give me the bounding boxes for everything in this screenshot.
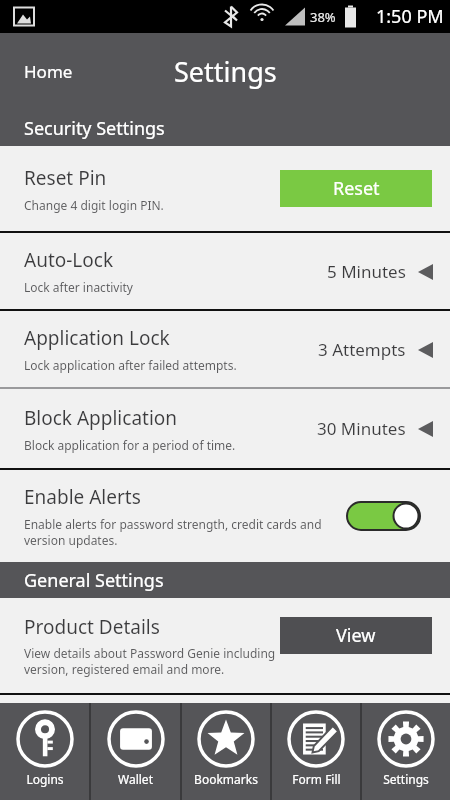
button[interactable]: Product Details xyxy=(0,598,450,693)
button[interactable]: Home xyxy=(0,46,97,97)
staticText: Lock after inactivity xyxy=(24,279,133,295)
staticText: Block Application xyxy=(24,405,178,431)
staticText: General Settings xyxy=(24,568,164,593)
staticText: Change 4 digit login PIN. xyxy=(24,197,164,213)
staticText: Reset xyxy=(333,176,380,201)
staticText: Bookmarks xyxy=(194,771,258,787)
button[interactable]: Reset Pin xyxy=(0,146,450,231)
button[interactable]: View xyxy=(280,617,432,654)
staticText: Wallet xyxy=(118,771,153,787)
button[interactable]: Reset xyxy=(280,170,432,207)
staticText: 1:50 PM xyxy=(376,4,444,29)
staticText: Settings xyxy=(174,53,277,90)
staticText: Application Lock xyxy=(24,325,170,351)
staticText: Auto-Lock xyxy=(24,247,114,273)
button[interactable]: Wallet xyxy=(91,703,180,800)
button[interactable]: Auto-Lock xyxy=(0,233,450,309)
staticText: View details about Password Genie includ… xyxy=(24,645,280,677)
staticText: Form Fill xyxy=(292,771,341,787)
staticText: Block application for a period of time. xyxy=(24,437,236,453)
button[interactable]: Settings xyxy=(362,703,450,800)
button[interactable]: Bookmarks xyxy=(182,703,270,800)
staticText: 38% xyxy=(310,8,336,26)
staticText: Lock application after failed attempts. xyxy=(24,357,237,373)
staticText: Security Settings xyxy=(24,116,165,141)
button[interactable]: Form Fill xyxy=(272,703,360,800)
button[interactable]: Enable Alerts xyxy=(0,470,450,562)
staticText: Enable alerts for password strength, cre… xyxy=(24,516,325,548)
staticText: Product Details xyxy=(24,614,160,640)
staticText: 30 Minutes xyxy=(317,417,406,440)
staticText: Logins xyxy=(26,771,64,787)
staticText: Settings xyxy=(383,771,429,787)
button[interactable]: Logins xyxy=(0,703,89,800)
button[interactable]: Enable Alerts toggle xyxy=(347,502,420,530)
staticText: Enable Alerts xyxy=(24,484,141,510)
staticText: Reset Pin xyxy=(24,165,107,191)
staticText: 3 Attempts xyxy=(318,338,406,361)
button[interactable]: Application Lock xyxy=(0,311,450,387)
staticText: 5 Minutes xyxy=(327,260,406,283)
staticText: Home xyxy=(24,60,73,83)
staticText: View xyxy=(336,623,376,648)
button[interactable]: Block Application xyxy=(0,389,450,468)
